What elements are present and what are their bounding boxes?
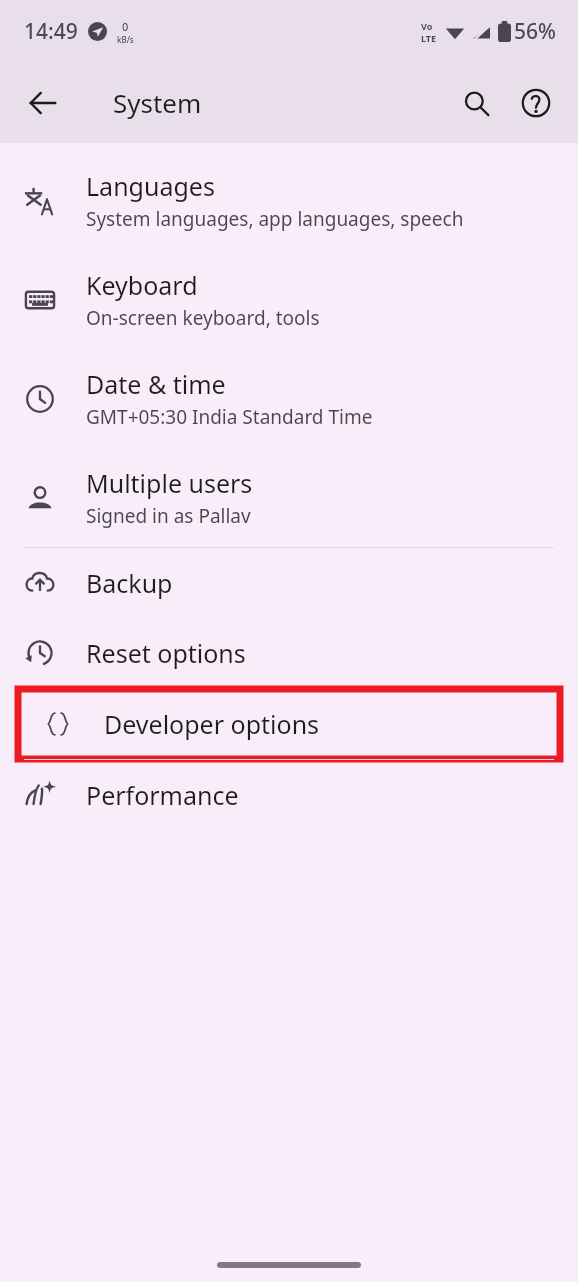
button[interactable]: Languages <box>0 151 578 250</box>
staticText: 56% <box>514 17 556 46</box>
staticText: Developer options <box>104 707 320 741</box>
staticText: Date & time <box>86 367 226 401</box>
staticText: kB/s <box>117 34 134 45</box>
button[interactable]: Multiple users <box>0 448 578 547</box>
staticText: Backup <box>86 566 173 600</box>
staticText: Keyboard <box>86 268 198 302</box>
staticText: System languages, app languages, speech <box>86 206 464 232</box>
staticText: Multiple users <box>86 466 253 500</box>
staticText: On-screen keyboard, tools <box>86 305 320 331</box>
button[interactable]: Date & time <box>0 349 578 448</box>
staticText: Languages <box>86 169 215 203</box>
staticText: LTE <box>421 32 437 44</box>
button[interactable]: Developer options <box>18 689 560 759</box>
staticText: 14:49 <box>24 17 78 46</box>
staticText: Vo <box>421 20 433 32</box>
button[interactable]: Search <box>448 75 504 131</box>
staticText: Reset options <box>86 636 246 670</box>
button[interactable]: Backup <box>0 548 578 618</box>
staticText: System <box>113 85 202 120</box>
button[interactable]: Keyboard <box>0 250 578 349</box>
staticText: Performance <box>86 778 239 812</box>
staticText: 0 <box>122 19 129 34</box>
staticText: Signed in as Pallav <box>86 503 251 529</box>
button[interactable]: Help <box>508 75 564 131</box>
button[interactable]: Back <box>14 74 72 132</box>
button[interactable]: Performance <box>0 760 578 830</box>
button[interactable]: Reset options <box>0 618 578 688</box>
staticText: GMT+05:30 India Standard Time <box>86 404 373 430</box>
